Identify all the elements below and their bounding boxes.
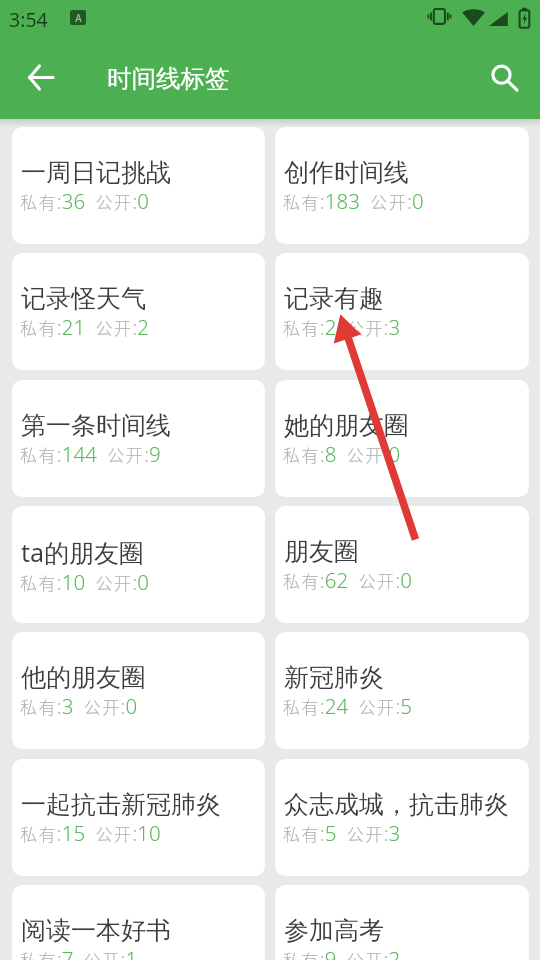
button[interactable]: Back <box>17 53 65 101</box>
button[interactable]: 记录有趣 <box>275 253 529 370</box>
button[interactable]: 她的朋友圈 <box>275 380 529 497</box>
staticText: 私有:8 公开:0 <box>283 440 401 468</box>
staticText: 私有:15 公开:10 <box>20 819 161 847</box>
staticText: ta的朋友圈 <box>21 535 145 569</box>
staticText: 私有:10 公开:0 <box>20 568 150 596</box>
staticText: 私有:62 公开:0 <box>283 566 413 594</box>
staticText: 私有:36 公开:0 <box>20 187 150 215</box>
staticText: 创作时间线 <box>284 157 409 188</box>
button[interactable]: 他的朋友圈 <box>12 632 265 749</box>
button[interactable]: 一周日记挑战 <box>12 127 265 244</box>
staticText: 私有:3 公开:0 <box>20 692 138 720</box>
staticText: 私有:9 公开:2 <box>283 945 401 960</box>
staticText: 时间线标签 <box>107 63 230 94</box>
button[interactable]: 阅读一本好书 <box>12 885 265 960</box>
button[interactable]: 创作时间线 <box>275 127 529 244</box>
staticText: 一周日记挑战 <box>21 157 171 188</box>
staticText: 新冠肺炎 <box>284 662 384 693</box>
button[interactable]: 众志成城，抗击肺炎 <box>275 759 529 876</box>
button[interactable]: 第一条时间线 <box>12 380 265 497</box>
staticText: 朋友圈 <box>284 536 359 567</box>
staticText: 私有:24 公开:5 <box>283 692 413 720</box>
staticText: 第一条时间线 <box>21 410 171 441</box>
button[interactable]: 朋友圈 <box>275 506 529 623</box>
staticText: 私有:5 公开:3 <box>283 819 401 847</box>
staticText: 一起抗击新冠肺炎 <box>21 789 221 820</box>
staticText: 参加高考 <box>284 915 384 946</box>
button[interactable]: ta的朋友圈 <box>12 506 265 623</box>
staticText: 3:54 <box>9 6 48 33</box>
button[interactable]: Search <box>480 53 528 101</box>
staticText: 私有:7 公开:1 <box>20 945 138 960</box>
staticText: 他的朋友圈 <box>21 662 146 693</box>
staticText: A <box>75 11 82 25</box>
button[interactable]: 参加高考 <box>275 885 529 960</box>
staticText: 记录怪天气 <box>21 283 146 314</box>
staticText: 阅读一本好书 <box>21 915 171 946</box>
staticText: 她的朋友圈 <box>284 410 409 441</box>
staticText: 私有:144 公开:9 <box>20 440 161 468</box>
staticText: 私有:2 公开:3 <box>283 313 401 341</box>
staticText: 私有:183 公开:0 <box>283 187 424 215</box>
button[interactable]: 一起抗击新冠肺炎 <box>12 759 265 876</box>
staticText: 记录有趣 <box>284 283 384 314</box>
staticText: 众志成城，抗击肺炎 <box>284 789 509 820</box>
button[interactable]: 记录怪天气 <box>12 253 265 370</box>
button[interactable]: 新冠肺炎 <box>275 632 529 749</box>
staticText: 私有:21 公开:2 <box>20 313 150 341</box>
